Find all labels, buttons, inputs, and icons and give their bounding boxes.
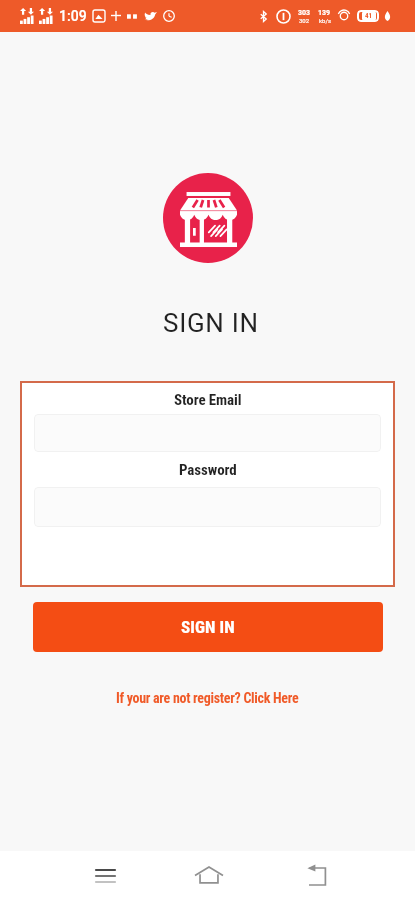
- staticText: 139: [318, 9, 331, 17]
- staticText: Store Email: [174, 391, 242, 409]
- staticText: 303: [298, 9, 311, 17]
- staticText: SIGN IN: [181, 617, 235, 637]
- staticText: kb/s: [319, 17, 331, 24]
- staticText: 41: [365, 12, 373, 20]
- staticText: SIGN IN: [163, 308, 259, 338]
- button[interactable]: SIGN IN: [33, 602, 383, 652]
- staticText: 302: [299, 17, 310, 24]
- button[interactable]: Recent apps: [81, 852, 129, 900]
- button[interactable]: If your are not register? Click Here: [110, 686, 305, 710]
- staticText: If your are not register? Click Here: [116, 690, 299, 706]
- button[interactable]: Home: [185, 852, 233, 900]
- button[interactable]: Back: [293, 852, 341, 900]
- staticText: 1:09: [59, 8, 87, 24]
- staticText: Password: [179, 461, 237, 479]
